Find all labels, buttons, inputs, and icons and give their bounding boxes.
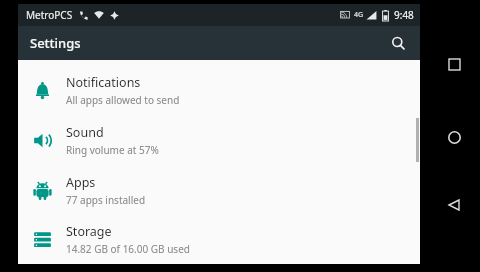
staticText: MetroPCS [26, 8, 73, 22]
staticText: Storage [66, 223, 112, 240]
button[interactable]: Apps [18, 165, 420, 215]
staticText: 9:48 [394, 8, 414, 22]
button[interactable]: Back [438, 189, 470, 221]
staticText: Ring volume at 57% [66, 143, 159, 157]
button[interactable]: Sound [18, 115, 420, 165]
staticText: Apps [66, 174, 96, 191]
staticText: Sound [66, 124, 104, 141]
button[interactable]: Search [382, 27, 414, 59]
staticText: 4G [354, 10, 364, 20]
staticText: 14.82 GB of 16.00 GB used [66, 242, 190, 256]
button[interactable]: Storage [18, 215, 420, 264]
button[interactable]: Recent apps [438, 48, 470, 80]
staticText: All apps allowed to send [66, 93, 180, 107]
staticText: Settings [30, 34, 81, 52]
button[interactable]: Home [438, 121, 470, 153]
staticText: Notifications [66, 74, 141, 91]
button[interactable]: Notifications [18, 65, 420, 115]
staticText: 77 apps installed [66, 193, 146, 207]
